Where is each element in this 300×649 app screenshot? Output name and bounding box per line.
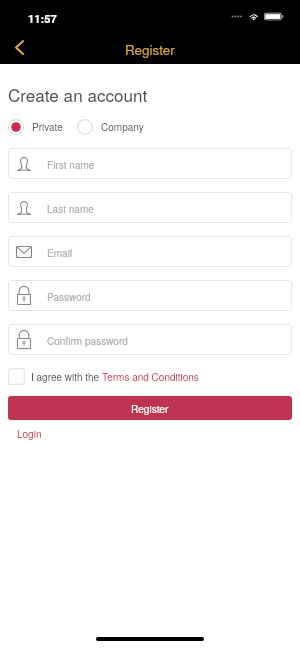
staticText: Terms and Conditions <box>102 370 199 384</box>
button[interactable]: Private <box>8 119 63 135</box>
staticText: Register <box>131 401 169 415</box>
staticText: Private <box>32 120 63 134</box>
staticText: 11:57 <box>28 10 57 26</box>
button[interactable]: First name <box>8 148 292 179</box>
button[interactable]: I agree with the <box>8 368 199 385</box>
button[interactable]: Back <box>8 36 30 58</box>
button[interactable]: Email <box>8 236 292 267</box>
button[interactable]: Last name <box>8 192 292 223</box>
staticText: Company <box>101 120 144 134</box>
staticText: Register <box>125 40 175 59</box>
staticText: Password <box>47 289 91 303</box>
staticText: I agree with the <box>31 370 102 384</box>
staticText: Last name <box>47 201 94 215</box>
staticText: Login <box>17 427 42 441</box>
button[interactable]: Register <box>8 396 292 420</box>
staticText: Confirm password <box>47 333 128 347</box>
staticText: Email <box>47 245 73 259</box>
button[interactable]: Password <box>8 280 292 311</box>
button[interactable]: Confirm password <box>8 324 292 355</box>
staticText: Create an account <box>8 82 148 106</box>
staticText: First name <box>47 157 95 171</box>
button[interactable]: Login <box>11 424 48 444</box>
button[interactable]: Company <box>77 119 144 135</box>
